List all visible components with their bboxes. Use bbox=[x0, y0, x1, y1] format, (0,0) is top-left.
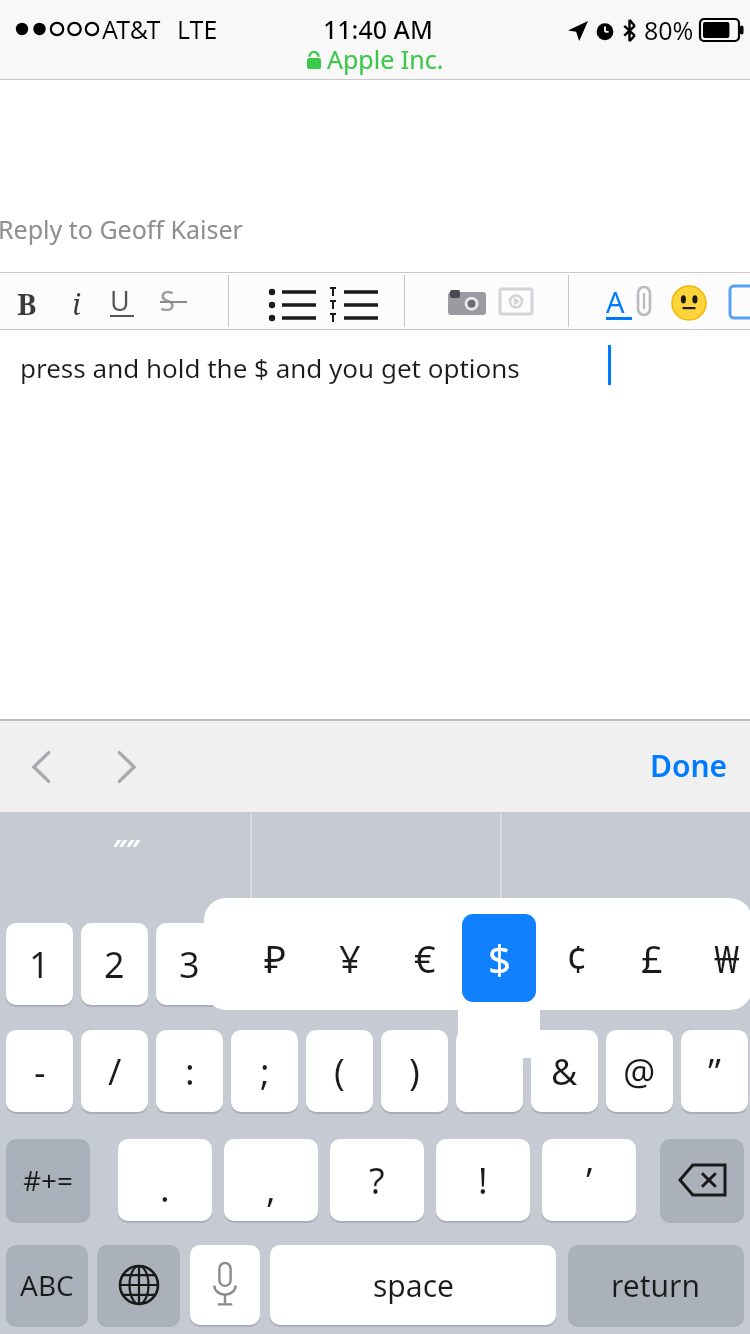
staticText: / bbox=[108, 1047, 122, 1096]
staticText: 2 bbox=[104, 940, 125, 989]
button[interactable]: 2 bbox=[81, 923, 148, 1005]
button[interactable]: Dictate bbox=[190, 1245, 260, 1325]
button[interactable]: ( bbox=[306, 1030, 373, 1112]
staticText: 1 bbox=[29, 940, 50, 989]
button[interactable]: 7 bbox=[456, 923, 523, 1005]
button[interactable]: $ bbox=[462, 914, 536, 1002]
staticText: Done bbox=[650, 745, 728, 786]
staticText: € bbox=[414, 932, 436, 984]
button[interactable]: € bbox=[388, 914, 462, 1002]
button[interactable]: i bbox=[72, 284, 81, 323]
button[interactable]: ’ bbox=[542, 1139, 636, 1221]
staticText: 80% bbox=[644, 13, 694, 47]
button[interactable]: ; bbox=[231, 1030, 298, 1112]
staticText: 4 bbox=[254, 940, 275, 989]
button[interactable]: / bbox=[81, 1030, 148, 1112]
button[interactable]: , bbox=[224, 1139, 318, 1221]
staticText: ¥ bbox=[339, 932, 361, 984]
button[interactable]: 0 bbox=[681, 923, 748, 1005]
staticText: ” bbox=[708, 1047, 721, 1096]
button[interactable]: B bbox=[17, 284, 37, 323]
button[interactable]: Previous field bbox=[18, 743, 66, 791]
staticText: space bbox=[373, 1265, 454, 1306]
staticText: #+= bbox=[23, 1161, 74, 1199]
button[interactable]: 1 bbox=[6, 923, 73, 1005]
staticText: ? bbox=[369, 1156, 385, 1205]
button[interactable]: #+= bbox=[6, 1139, 90, 1221]
button[interactable]: ? bbox=[330, 1139, 424, 1221]
button[interactable]: Underline bbox=[110, 282, 140, 320]
staticText: . bbox=[160, 1164, 170, 1213]
staticText: A bbox=[606, 282, 625, 321]
button[interactable]: Suggestion 3 bbox=[500, 812, 750, 900]
button[interactable]: Attach file bbox=[636, 286, 652, 316]
staticText: 5 bbox=[329, 940, 350, 989]
staticText: Reply to Geoff Kaiser bbox=[0, 212, 243, 246]
staticText: 7 bbox=[479, 940, 500, 989]
staticText: & bbox=[551, 1047, 578, 1096]
button[interactable]: space bbox=[270, 1245, 556, 1325]
button[interactable]: ! bbox=[436, 1139, 530, 1221]
staticText: ₩ bbox=[714, 932, 740, 984]
button[interactable]: - bbox=[6, 1030, 73, 1112]
button[interactable]: ¥ bbox=[313, 914, 387, 1002]
staticText: £ bbox=[641, 932, 663, 984]
staticText: 11:40 AM bbox=[323, 12, 433, 46]
staticText: 9 bbox=[629, 940, 650, 989]
button[interactable]: ABC bbox=[6, 1245, 88, 1325]
staticText: ₽ bbox=[264, 932, 287, 984]
button[interactable]: Switch keyboard bbox=[97, 1245, 180, 1325]
staticText: press and hold the $ and you get options bbox=[20, 350, 520, 385]
staticText: 3 bbox=[179, 940, 200, 989]
button[interactable]: ₽ bbox=[238, 914, 312, 1002]
staticText: return bbox=[611, 1265, 701, 1306]
button[interactable]: ₩ bbox=[690, 914, 750, 1002]
staticText: 6 bbox=[404, 940, 425, 989]
staticText: AT&T bbox=[102, 12, 161, 46]
button[interactable]: return bbox=[568, 1245, 744, 1325]
staticText: - bbox=[34, 1047, 46, 1096]
staticText: ABC bbox=[20, 1266, 74, 1304]
button[interactable]: ¢ bbox=[540, 914, 614, 1002]
button[interactable]: @ bbox=[606, 1030, 673, 1112]
button[interactable]: Done bbox=[642, 739, 736, 792]
button[interactable]: 8 bbox=[531, 923, 598, 1005]
button[interactable]: Bulleted list bbox=[268, 287, 316, 317]
staticText: LTE bbox=[177, 12, 218, 46]
button[interactable]: Insert photo bbox=[448, 288, 486, 315]
button[interactable]: 5 bbox=[306, 923, 373, 1005]
button[interactable]: Suggestion 2 bbox=[250, 812, 500, 900]
button[interactable]: ) bbox=[381, 1030, 448, 1112]
button[interactable]: Strikethrough bbox=[160, 282, 190, 320]
button[interactable]: 9 bbox=[606, 923, 673, 1005]
staticText: ’ bbox=[586, 1156, 593, 1205]
button[interactable]: ″″ bbox=[0, 812, 250, 900]
button[interactable]: : bbox=[156, 1030, 223, 1112]
staticText: Apple Inc. bbox=[327, 42, 444, 76]
button[interactable]: Insert video bbox=[500, 289, 532, 314]
button[interactable]: Next field bbox=[102, 743, 150, 791]
button[interactable]: Text format bbox=[606, 282, 640, 322]
button[interactable]: & bbox=[531, 1030, 598, 1112]
button[interactable]: 3 bbox=[156, 923, 223, 1005]
staticText: ¢ bbox=[566, 932, 588, 984]
staticText: ( bbox=[334, 1047, 345, 1096]
button[interactable]: £ bbox=[615, 914, 689, 1002]
button[interactable]: . bbox=[118, 1139, 212, 1221]
staticText: ; bbox=[260, 1047, 270, 1096]
staticText: ) bbox=[409, 1047, 420, 1096]
staticText: $ bbox=[488, 931, 511, 985]
button[interactable]: 4 bbox=[231, 923, 298, 1005]
button[interactable]: Numbered list bbox=[326, 287, 378, 317]
button[interactable]: Backspace bbox=[660, 1139, 744, 1221]
staticText: , bbox=[266, 1164, 276, 1213]
button[interactable]: 6 bbox=[381, 923, 448, 1005]
staticText: 8 bbox=[554, 940, 575, 989]
staticText: U bbox=[110, 282, 130, 319]
staticText: ! bbox=[478, 1156, 488, 1205]
button[interactable]: ” bbox=[681, 1030, 748, 1112]
staticText: ″″ bbox=[112, 831, 139, 866]
staticText: @ bbox=[623, 1047, 656, 1096]
button[interactable]: Dollar sign bbox=[456, 1030, 523, 1112]
button[interactable]: Emoji bbox=[672, 286, 706, 320]
